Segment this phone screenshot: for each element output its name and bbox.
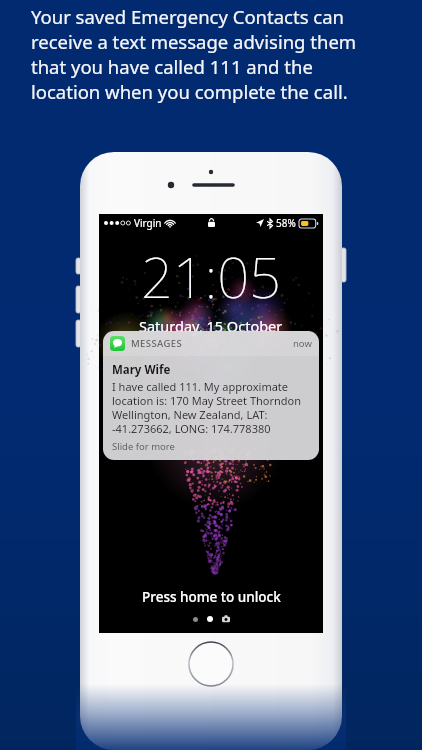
staticText: I have called 111. My approximate locati… [112, 379, 302, 436]
staticText: Mary Wife [112, 362, 171, 378]
staticText: Slide for more [112, 440, 175, 453]
staticText: 58% [276, 216, 296, 230]
button[interactable]: MESSAGES [103, 331, 319, 460]
staticText: MESSAGES [131, 337, 183, 350]
staticText: now [293, 337, 312, 350]
staticText: receive a text message advising them [31, 29, 408, 54]
staticText: location when you complete the call. [31, 79, 408, 104]
staticText: 21:05 [141, 238, 281, 314]
staticText: Saturday, 15 October [139, 316, 283, 336]
staticText: that you have called 111 and the [31, 54, 408, 79]
staticText: Your saved Emergency Contacts can [31, 4, 408, 29]
staticText: Press home to unlock [142, 588, 281, 606]
staticText: Virgin [134, 216, 162, 230]
